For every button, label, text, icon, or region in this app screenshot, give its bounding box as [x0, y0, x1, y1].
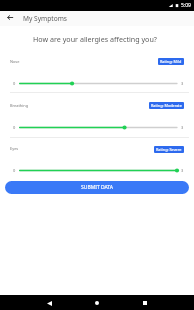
button[interactable]: 0 [0, 77, 194, 90]
button[interactable]: SUBMIT DATA [5, 181, 189, 194]
staticText: SUBMIT DATA [81, 184, 113, 191]
button[interactable]: Rating: Moderate [149, 102, 184, 109]
staticText: 3 [181, 168, 184, 173]
staticText: Nose [10, 59, 20, 64]
staticText: 3 [181, 81, 184, 86]
staticText: Rating: Severe [156, 147, 182, 152]
staticText: 0 [13, 168, 16, 173]
button[interactable]: 0 [0, 121, 194, 134]
staticText: Breathing [10, 103, 29, 108]
button[interactable]: Home [90, 296, 104, 310]
button[interactable]: Rating: Severe [154, 146, 184, 153]
staticText: My Symptoms [23, 14, 67, 23]
button[interactable]: 0 [0, 164, 194, 177]
staticText: Eyes [10, 146, 19, 151]
button[interactable]: Back [0, 11, 17, 26]
staticText: 3 [181, 125, 184, 130]
staticText: Rating: Moderate [151, 103, 182, 108]
staticText: 0 [13, 125, 16, 130]
button[interactable]: Back [42, 296, 56, 310]
staticText: How are your allergies affecting you? [0, 34, 192, 44]
button[interactable]: Rating: Mild [158, 58, 184, 65]
staticText: 5:09 [181, 2, 191, 9]
staticText: 0 [13, 81, 16, 86]
button[interactable]: Recent apps [138, 296, 152, 310]
staticText: Rating: Mild [160, 59, 182, 64]
